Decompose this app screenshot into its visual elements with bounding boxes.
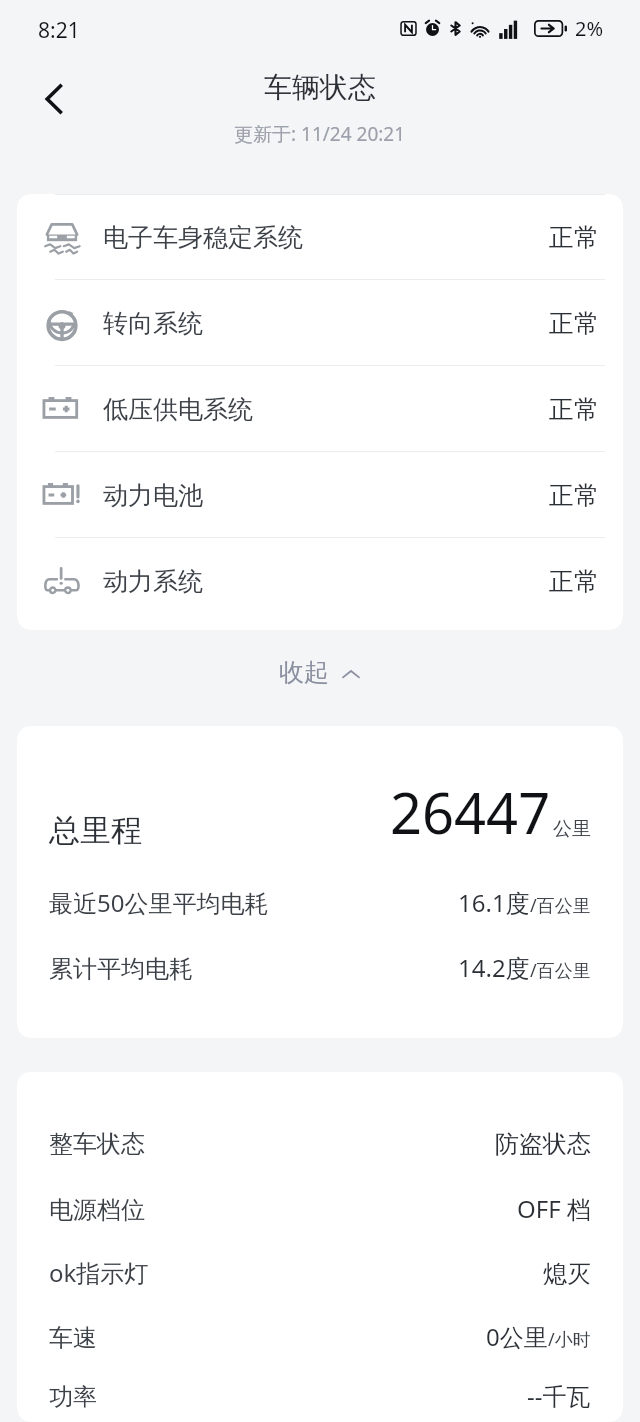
staticText: 整车状态	[49, 1129, 145, 1159]
button[interactable]: 低压供电系统	[17, 366, 623, 452]
staticText: 累计平均电耗	[49, 954, 193, 984]
button[interactable]: 动力系统	[17, 538, 623, 624]
staticText: 最近50公里平均电耗	[49, 886, 269, 919]
button[interactable]: Back	[20, 64, 90, 134]
button[interactable]: 功率	[17, 1368, 623, 1422]
staticText: /百公里	[530, 893, 591, 918]
staticText: 功率	[49, 1382, 97, 1412]
staticText: 2%	[575, 15, 604, 42]
staticText: 公里	[553, 817, 591, 841]
staticText: 车辆状态	[264, 70, 376, 105]
staticText: --千瓦	[527, 1379, 591, 1412]
staticText: 正常	[549, 566, 599, 597]
button[interactable]: 转向系统	[17, 280, 623, 366]
staticText: 0公里	[486, 1320, 548, 1353]
button[interactable]: 电源档位	[17, 1176, 623, 1240]
staticText: 更新于: 11/24 20:21	[234, 121, 406, 147]
staticText: 26447	[390, 774, 551, 850]
staticText: 总里程	[49, 811, 142, 850]
staticText: 车速	[49, 1323, 97, 1353]
staticText: /小时	[548, 1327, 591, 1352]
button[interactable]: 整车状态	[17, 1112, 623, 1176]
button[interactable]: ok指示灯	[17, 1240, 623, 1304]
staticText: 14.2度	[458, 951, 530, 984]
staticText: 16.1度	[458, 886, 530, 919]
staticText: 正常	[549, 480, 599, 511]
staticText: ok指示灯	[49, 1256, 149, 1289]
staticText: 动力电池	[103, 480, 203, 511]
staticText: 低压供电系统	[103, 394, 253, 425]
staticText: 熄灭	[543, 1259, 591, 1289]
button[interactable]: 电子车身稳定系统	[17, 194, 623, 280]
button[interactable]: 车速	[17, 1304, 623, 1368]
staticText: 正常	[549, 308, 599, 339]
staticText: 转向系统	[103, 308, 203, 339]
button[interactable]: 收起	[0, 630, 640, 714]
staticText: 正常	[549, 394, 599, 425]
staticText: 8:21	[38, 16, 80, 45]
staticText: 正常	[549, 222, 599, 253]
staticText: 防盗状态	[495, 1129, 591, 1159]
button[interactable]: 动力电池	[17, 452, 623, 538]
staticText: OFF 档	[517, 1192, 591, 1225]
button[interactable]: 总里程	[17, 726, 623, 1038]
staticText: /百公里	[530, 958, 591, 983]
staticText: 电子车身稳定系统	[103, 222, 303, 253]
staticText: 动力系统	[103, 566, 203, 597]
staticText: 电源档位	[49, 1195, 145, 1225]
staticText: 收起	[279, 657, 329, 688]
